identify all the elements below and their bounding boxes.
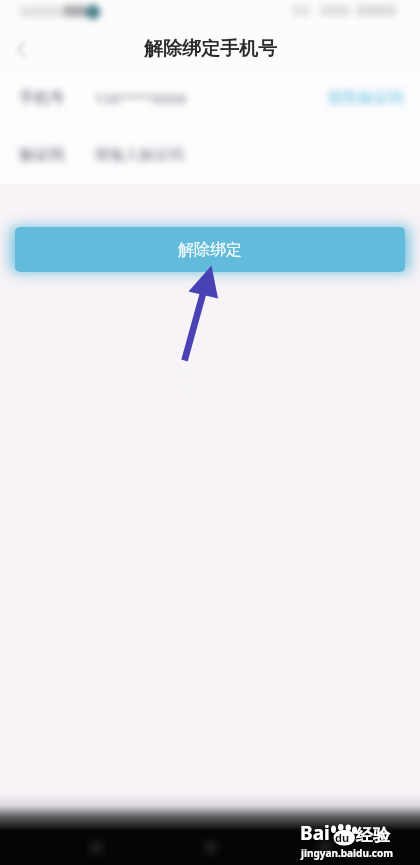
staticText: jingyan.baidu.com [301, 846, 393, 860]
staticText: Bai [300, 820, 330, 846]
staticText: 验证码 [19, 146, 64, 165]
staticText: 138****8888 [94, 88, 187, 108]
button[interactable]: 手机号 [0, 70, 420, 126]
staticText: du [335, 830, 350, 845]
staticText: 手机号 [19, 89, 64, 108]
button[interactable]: 解除绑定 [15, 227, 405, 272]
staticText: 解除绑定手机号 [144, 37, 277, 61]
button[interactable]: Back [306, 830, 344, 865]
button[interactable]: Home [191, 830, 229, 865]
button[interactable]: 验证码 [0, 126, 420, 184]
button[interactable]: Recents [77, 830, 115, 865]
staticText: 获取验证码 [328, 89, 403, 108]
staticText: 解除绑定 [178, 240, 242, 260]
staticText: 经验 [356, 825, 390, 846]
button[interactable]: Back [4, 32, 38, 66]
staticText: 请输入验证码 [94, 146, 184, 165]
